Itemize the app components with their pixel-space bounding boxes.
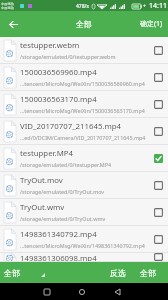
staticText: /storage/emulated/0/TryOut.wmv [20, 215, 106, 222]
staticText: ...tencent/MicroMsg/WeiXin/1500036563170… [20, 107, 145, 114]
staticText: 中国移动 [1, 2, 14, 6]
staticText: 1500036569960.mp4 [20, 67, 97, 78]
button[interactable]: 1498361306098.mp4 [0, 253, 168, 262]
staticText: 反选 [110, 268, 126, 278]
staticText: 14:11 [149, 1, 167, 11]
button[interactable]: 全部 [0, 268, 42, 278]
button[interactable]: Select item [153, 45, 163, 55]
button[interactable]: Select item [153, 207, 163, 217]
staticText: VID_20170707_211645.mp4 [20, 121, 122, 132]
button[interactable]: Select item [153, 72, 163, 82]
button[interactable]: Recents [40, 285, 54, 299]
staticText: 1498361340792.mp4 [20, 229, 97, 240]
button[interactable]: 全部 [140, 268, 156, 278]
staticText: ...tencent/MicroMsg/WeiXin/1498361340792… [20, 242, 145, 249]
staticText: /storage/emulated/0/testupper.webm [20, 53, 116, 60]
button[interactable]: Select item [153, 234, 163, 244]
button[interactable]: Select item [153, 153, 163, 163]
button[interactable]: TryOut.mov [0, 172, 168, 199]
staticText: 中国移动 [1, 6, 14, 10]
button[interactable]: 1500036569960.mp4 [0, 64, 168, 91]
button[interactable]: Select item [153, 99, 163, 109]
button[interactable]: testupper.webm [0, 37, 168, 64]
staticText: testupper.webm [20, 40, 80, 51]
staticText: ...ed/0/DCIM/Camera/VID_20170707_211645.… [20, 134, 146, 141]
staticText: + [143, 3, 146, 10]
button[interactable]: Select item [153, 253, 163, 261]
staticText: TryOut.mov [20, 175, 63, 186]
button[interactable]: Home [75, 285, 89, 299]
button[interactable]: 1498361340792.mp4 [0, 226, 168, 253]
staticText: testupper.MP4 [20, 148, 73, 159]
staticText: 确定(1) [140, 19, 163, 29]
staticText: 全部 [140, 268, 156, 278]
button[interactable]: VID_20170707_211645.mp4 [0, 118, 168, 145]
button[interactable]: Back [110, 285, 124, 299]
button[interactable]: testupper.MP4 [0, 145, 168, 172]
staticText: 全部 [76, 19, 92, 29]
staticText: TryOut.wmv [20, 202, 65, 213]
staticText: 全部 [4, 268, 20, 278]
button[interactable]: 1500036563170.mp4 [0, 91, 168, 118]
staticText: 478/s [76, 3, 89, 10]
button[interactable]: 反选 [110, 268, 126, 278]
staticText: ...tencent/MicroMsg/WeiXin/1500036569960… [20, 80, 145, 87]
staticText: 1500036563170.mp4 [20, 94, 97, 105]
button[interactable]: Select item [153, 126, 163, 136]
staticText: /storage/emulated/0/testupper.MP4 [20, 161, 112, 168]
button[interactable]: Back [0, 11, 26, 37]
button[interactable]: 确定(1) [140, 19, 168, 29]
staticText: 1498361306098.mp4 [20, 253, 97, 261]
staticText: /storage/emulated/0/TryOut.mov [20, 188, 105, 195]
button[interactable]: TryOut.wmv [0, 199, 168, 226]
button[interactable]: Select item [153, 180, 163, 190]
